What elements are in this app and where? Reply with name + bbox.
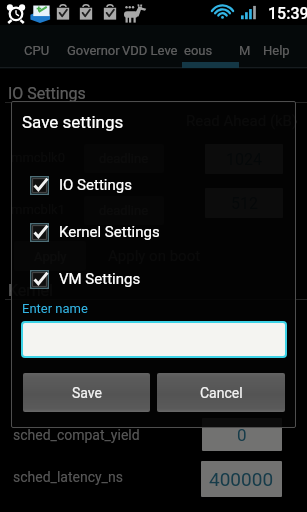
staticText: sched_compat_yield [13,427,140,443]
button[interactable]: CPU [24,43,50,58]
button[interactable]: Apply [14,241,86,271]
button[interactable]: 0 [202,418,282,451]
staticText: 15:39 [268,4,307,23]
staticText: Cancel [200,385,243,401]
staticText: Save settings [22,112,124,132]
staticText: Help [263,43,290,58]
staticText: 400000 [209,468,274,490]
button[interactable]: Help [263,43,290,58]
staticText: Kernel [8,281,53,300]
button[interactable]: IO Settings [11,171,296,199]
staticText: 0 [237,425,247,445]
button[interactable]: VDD Leve [122,43,178,58]
staticText: mmcblk1 [11,202,65,217]
staticText: sched_latency_ns [13,469,123,485]
staticText: CPU [24,43,50,58]
staticText: M [239,43,251,58]
staticText: Read Ahead (kB) [186,112,298,130]
staticText: eous [184,43,213,58]
staticText: Save [72,385,102,401]
staticText: VDD Leve [122,43,178,58]
staticText: Kernel Settings [59,223,160,241]
button[interactable]: Cancel [157,373,285,412]
button[interactable]: 400000 [201,461,282,497]
staticText: Enter name [22,301,88,316]
staticText: Governor [67,43,120,58]
button[interactable]: Kernel Settings [11,218,296,246]
staticText: VM Settings [59,270,141,288]
staticText: IO Settings [8,84,86,103]
staticText: mmcblk0 [11,150,65,165]
button[interactable]: Save [23,373,150,412]
staticText: IO Settings [59,176,132,194]
button[interactable]: eous [184,43,213,58]
button[interactable]: Governor [67,43,120,58]
button[interactable]: M [239,43,251,58]
button[interactable]: VM Settings [11,265,296,293]
